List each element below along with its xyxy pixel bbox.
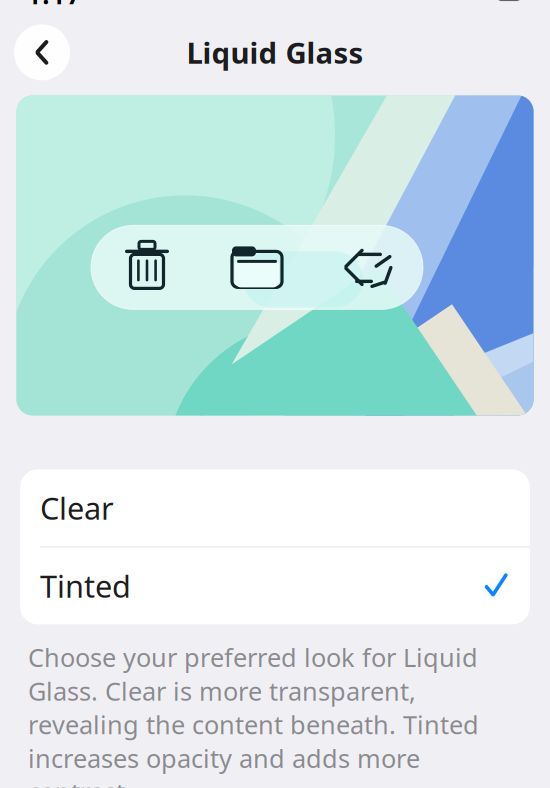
staticText: Tinted (40, 565, 131, 606)
staticText: Choose your preferred look for Liquid Gl… (28, 640, 479, 788)
button[interactable]: Back (14, 24, 70, 80)
button[interactable]: Tinted (20, 547, 530, 624)
staticText: 1:17 (26, 0, 82, 12)
button[interactable]: Clear (20, 469, 530, 546)
button[interactable]: Move to folder (202, 225, 312, 309)
button[interactable]: Delete (92, 225, 202, 309)
staticText: Liquid Glass (186, 33, 363, 72)
staticText: Clear (40, 487, 114, 528)
button[interactable]: Reply (312, 225, 422, 309)
